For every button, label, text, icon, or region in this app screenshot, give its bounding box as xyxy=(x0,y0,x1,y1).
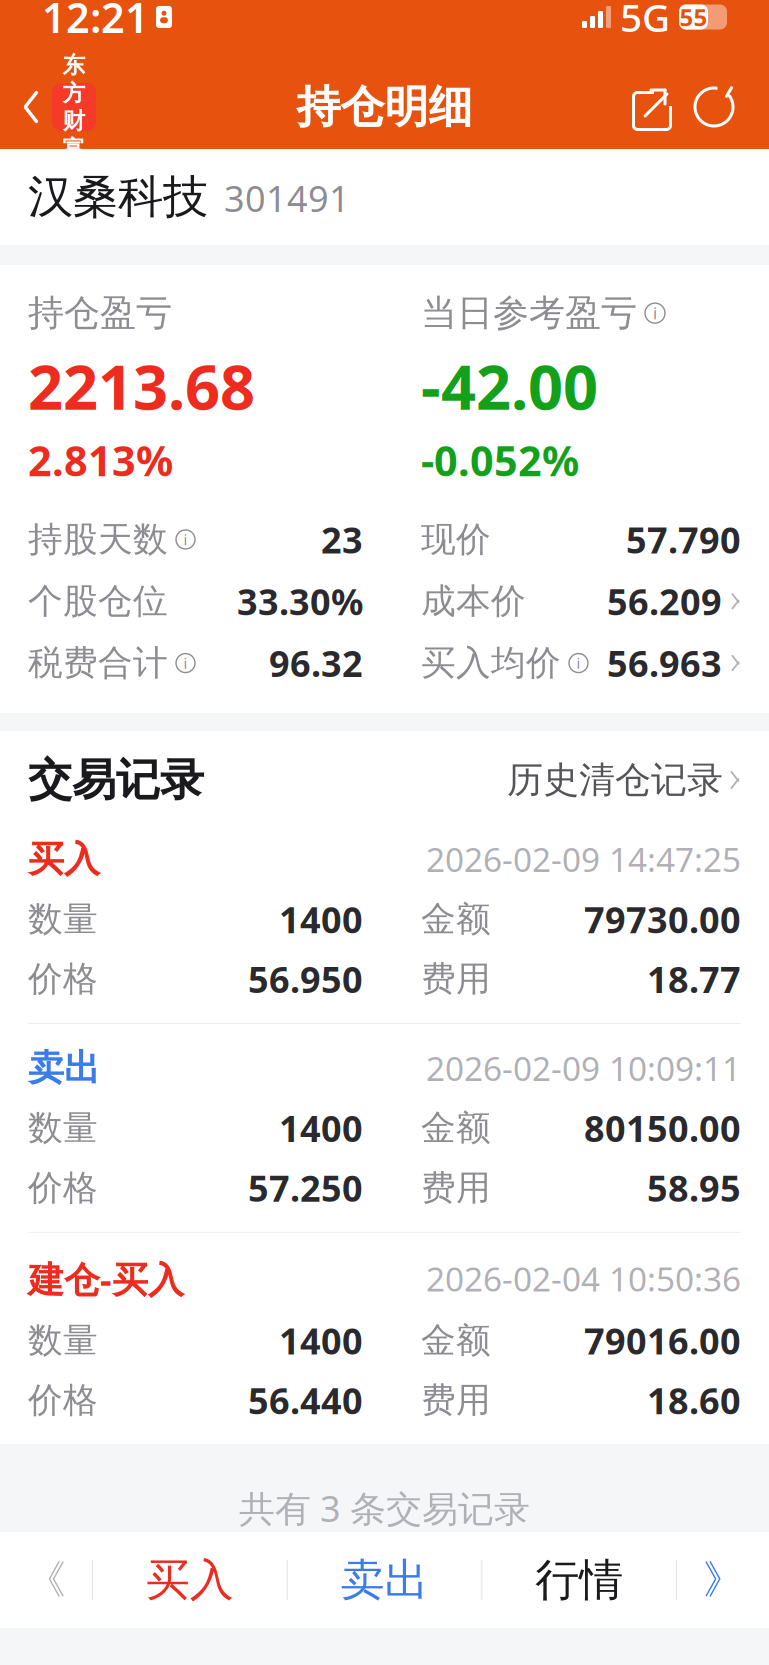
staticText: 价格 xyxy=(28,1167,98,1209)
button[interactable]: Previous xyxy=(0,1532,92,1628)
staticText: 汉桑科技 xyxy=(28,169,208,225)
staticText: 交易记录 xyxy=(28,753,204,807)
staticText: 买入 xyxy=(146,1553,234,1607)
staticText: 》 xyxy=(703,1555,743,1604)
staticText: 买入 xyxy=(28,837,100,881)
staticText: 价格 xyxy=(28,1379,98,1422)
staticText: 金额 xyxy=(421,1107,491,1149)
staticText: 持仓明细 xyxy=(296,80,472,134)
staticText: 卖出 xyxy=(340,1553,428,1607)
staticText: 费用 xyxy=(421,958,491,1000)
staticText: 2213.68 xyxy=(28,345,255,427)
staticText: 东方 xyxy=(62,51,85,107)
button[interactable]: 成本价 xyxy=(421,577,741,625)
staticText: 共有 3 条交易记录 xyxy=(239,1484,530,1532)
staticText: 数量 xyxy=(28,1107,98,1149)
button[interactable]: 历史清仓记录 xyxy=(507,758,741,802)
staticText: 56.440 xyxy=(248,1376,363,1424)
button[interactable]: 行情 xyxy=(482,1532,676,1628)
staticText: 2026-02-09 14:47:25 xyxy=(426,837,741,881)
button[interactable]: Back to 东方财富 xyxy=(0,67,110,147)
staticText: 18.60 xyxy=(647,1376,741,1424)
button[interactable]: Next xyxy=(677,1532,769,1628)
staticText: 持仓盈亏 xyxy=(28,291,172,335)
staticText: 301491 xyxy=(224,174,350,222)
staticText: 卖出 xyxy=(28,1046,100,1090)
staticText: 数量 xyxy=(28,1319,98,1362)
button[interactable]: Share xyxy=(621,71,683,143)
staticText: -0.052% xyxy=(421,433,579,488)
staticText: 2026-02-04 10:50:36 xyxy=(426,1256,741,1301)
staticText: 买入均价 xyxy=(421,642,561,684)
button[interactable]: 买入均价 xyxy=(421,639,741,687)
staticText: 56.963 xyxy=(607,639,722,687)
staticText: 58.95 xyxy=(647,1164,741,1212)
staticText: 费用 xyxy=(421,1167,491,1209)
staticText: i xyxy=(183,530,187,549)
staticText: i xyxy=(576,653,580,673)
staticText: 57.250 xyxy=(248,1164,363,1212)
staticText: 费用 xyxy=(421,1379,491,1422)
staticText: 建仓-买入 xyxy=(28,1255,184,1303)
staticText: 持股天数 xyxy=(28,518,168,561)
staticText: 税费合计 xyxy=(28,642,168,684)
staticText: -42.00 xyxy=(421,345,598,427)
staticText: 现价 xyxy=(421,518,491,561)
staticText: 金额 xyxy=(421,1319,491,1362)
staticText: 33.30% xyxy=(237,577,363,625)
staticText: 2026-02-09 10:09:11 xyxy=(426,1046,741,1090)
staticText: 金额 xyxy=(421,898,491,940)
staticText: 18.77 xyxy=(647,955,741,1003)
staticText: 个股仓位 xyxy=(28,580,168,623)
staticText: 80150.00 xyxy=(584,1104,741,1152)
staticText: 12:21 xyxy=(42,0,149,44)
staticText: 79730.00 xyxy=(584,895,741,943)
staticText: 历史清仓记录 xyxy=(507,758,723,802)
staticText: 5G xyxy=(620,0,670,43)
staticText: 2.813% xyxy=(28,433,173,488)
staticText: 96.32 xyxy=(269,639,363,687)
staticText: 79016.00 xyxy=(584,1317,741,1364)
button[interactable]: 卖出 xyxy=(288,1532,481,1628)
button[interactable]: 买入 xyxy=(93,1532,287,1628)
staticText: 《 xyxy=(26,1555,66,1604)
staticText: 1400 xyxy=(279,1317,363,1364)
staticText: 55 xyxy=(679,1,707,33)
staticText: i xyxy=(653,302,657,324)
staticText: 当日参考盈亏 xyxy=(421,291,637,335)
staticText: 行情 xyxy=(535,1553,623,1607)
staticText: 价格 xyxy=(28,958,98,1000)
staticText: 财富 xyxy=(62,107,85,163)
staticText: i xyxy=(183,653,187,673)
staticText: 成本价 xyxy=(421,580,526,623)
staticText: 57.790 xyxy=(626,516,741,563)
staticText: 56.950 xyxy=(248,955,363,1003)
staticText: 56.209 xyxy=(607,577,722,625)
staticText: 1400 xyxy=(279,895,363,943)
staticText: 23 xyxy=(321,516,363,563)
staticText: 1400 xyxy=(279,1104,363,1152)
button[interactable]: Refresh xyxy=(683,71,745,143)
staticText: 数量 xyxy=(28,898,98,940)
